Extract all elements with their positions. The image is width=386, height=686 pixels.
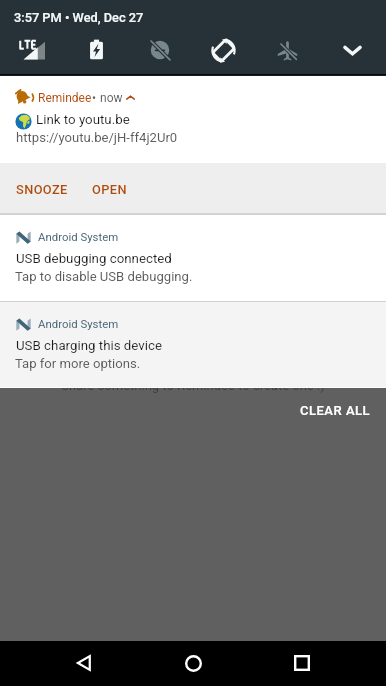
button[interactable]: Android System [0,302,386,387]
staticText: • [92,91,97,105]
staticText: 3:57 PM • Wed, Dec 27 [14,10,144,25]
staticText: USB charging this device [16,338,163,354]
staticText: USB debugging connected [16,251,172,267]
staticText: CLEAR ALL [300,403,371,418]
button[interactable]: SNOOZE [4,172,80,207]
staticText: Tap for more options. [15,356,141,371]
staticText: Tap to disable USB debugging. [15,269,193,284]
button[interactable]: Remindee [0,76,386,163]
button[interactable]: CLEAR ALL [0,393,386,427]
staticText: now [100,91,123,105]
button[interactable]: Recents [272,643,332,685]
button[interactable]: Back [54,643,114,685]
staticText: Android System [38,317,119,330]
staticText: SNOOZE [16,182,68,197]
staticText: Android System [38,230,119,243]
button[interactable]: Home [163,643,223,685]
button[interactable]: OPEN [80,172,139,207]
staticText: OPEN [92,182,127,197]
staticText: Remindee [38,91,92,105]
staticText: Link to youtu.be [36,112,130,128]
button[interactable]: Expand quick settings [334,34,370,66]
button[interactable]: Android System [0,215,386,301]
staticText: https://youtu.be/jH-ff4j2Ur0 [16,130,178,145]
staticText: Share something to Remindee to create on… [0,378,386,393]
